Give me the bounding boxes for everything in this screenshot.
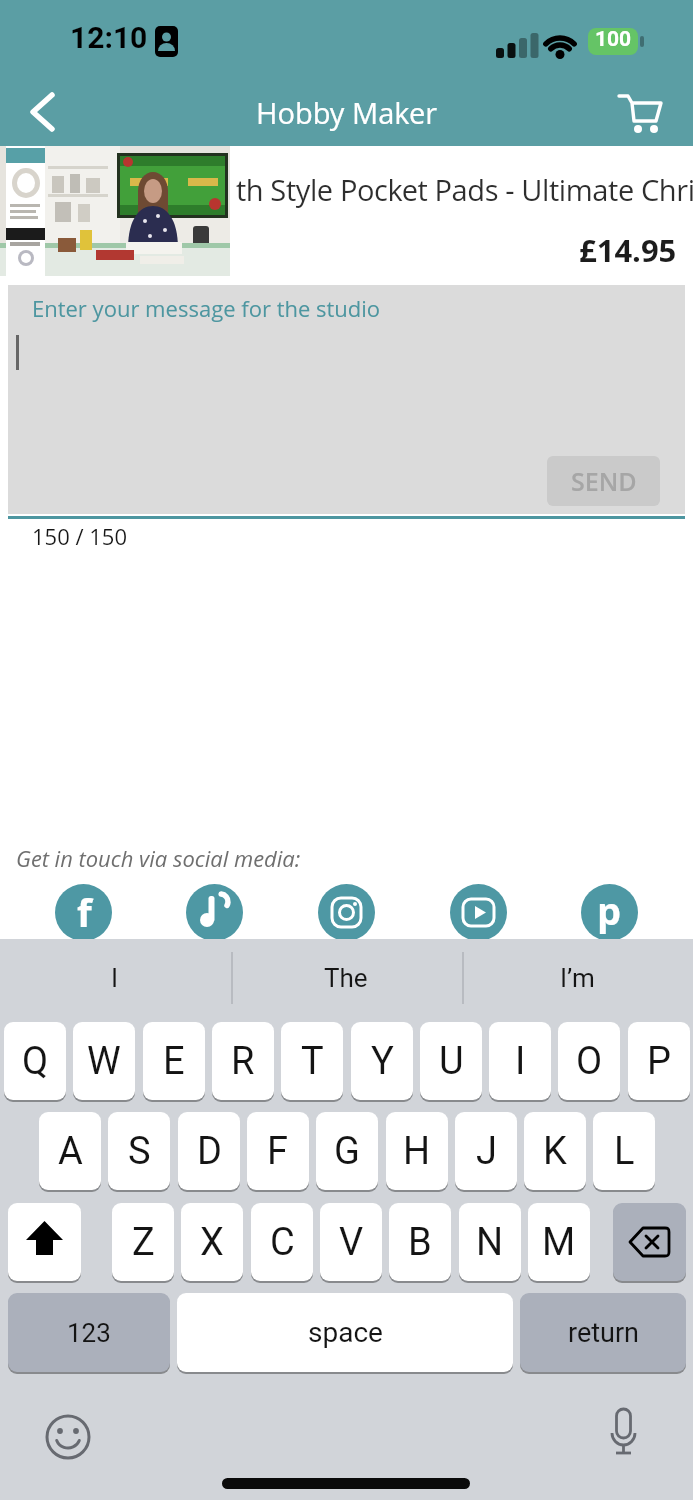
button[interactable]: 123: [8, 1293, 170, 1372]
button[interactable]: T: [281, 1022, 343, 1100]
staticText: F: [267, 1129, 289, 1174]
button[interactable]: I: [5, 950, 225, 1006]
staticText: K: [543, 1129, 567, 1174]
button[interactable]: [0, 146, 230, 276]
button[interactable]: [38, 1407, 98, 1467]
button[interactable]: X: [181, 1203, 243, 1281]
staticText: E: [163, 1039, 185, 1084]
button[interactable]: I’m: [467, 950, 687, 1006]
staticText: return: [568, 1317, 639, 1349]
button[interactable]: C: [251, 1203, 313, 1281]
button[interactable]: N: [459, 1203, 521, 1281]
staticText: 150 / 150: [32, 521, 127, 551]
button[interactable]: I: [489, 1022, 551, 1100]
staticText: D: [197, 1129, 222, 1174]
button[interactable]: [186, 884, 243, 941]
button[interactable]: Enter your message for the studio: [8, 285, 685, 514]
staticText: H: [403, 1129, 431, 1174]
button[interactable]: E: [143, 1022, 205, 1100]
staticText: A: [58, 1129, 83, 1174]
staticText: 12:10: [70, 20, 148, 55]
staticText: space: [308, 1316, 383, 1349]
staticText: Y: [371, 1039, 394, 1084]
button[interactable]: D: [178, 1112, 240, 1190]
staticText: I’m: [560, 963, 595, 993]
button[interactable]: [16, 86, 68, 138]
button[interactable]: space: [177, 1293, 513, 1372]
button[interactable]: U: [420, 1022, 482, 1100]
staticText: B: [408, 1220, 432, 1265]
button[interactable]: f: [55, 884, 112, 941]
staticText: X: [200, 1220, 224, 1265]
button[interactable]: [613, 1203, 686, 1281]
staticText: O: [576, 1039, 603, 1084]
button[interactable]: Y: [351, 1022, 413, 1100]
staticText: T: [301, 1039, 324, 1084]
button[interactable]: B: [389, 1203, 451, 1281]
staticText: Z: [132, 1220, 155, 1265]
staticText: C: [270, 1220, 295, 1265]
staticText: N: [476, 1220, 504, 1265]
staticText: £14.95: [579, 229, 677, 271]
staticText: 123: [67, 1318, 111, 1348]
button[interactable]: Q: [4, 1022, 66, 1100]
button[interactable]: R: [212, 1022, 274, 1100]
staticText: I: [111, 963, 119, 993]
button[interactable]: [450, 884, 507, 941]
staticText: I: [515, 1039, 526, 1084]
button[interactable]: V: [320, 1203, 382, 1281]
button[interactable]: [318, 884, 375, 941]
staticText: R: [231, 1039, 255, 1084]
button[interactable]: L: [593, 1112, 655, 1190]
staticText: SEND: [571, 464, 637, 498]
staticText: L: [614, 1129, 635, 1174]
staticText: M: [542, 1220, 576, 1265]
staticText: Q: [22, 1039, 49, 1084]
button[interactable]: [8, 1203, 81, 1281]
staticText: Enter your message for the studio: [32, 293, 381, 323]
staticText: p: [597, 884, 622, 936]
staticText: th Style Pocket Pads - Ultimate Chri: [236, 170, 693, 209]
button[interactable]: p: [581, 884, 638, 941]
button[interactable]: J: [455, 1112, 517, 1190]
staticText: The: [324, 963, 368, 993]
button[interactable]: Z: [112, 1203, 174, 1281]
button[interactable]: SEND: [547, 456, 660, 506]
staticText: J: [476, 1129, 497, 1174]
button[interactable]: M: [528, 1203, 590, 1281]
staticText: W: [87, 1039, 121, 1084]
button[interactable]: [593, 1403, 653, 1463]
staticText: 100: [595, 27, 632, 52]
button[interactable]: [608, 86, 672, 150]
button[interactable]: H: [386, 1112, 448, 1190]
button[interactable]: P: [628, 1022, 690, 1100]
button[interactable]: W: [73, 1022, 135, 1100]
button[interactable]: A: [39, 1112, 101, 1190]
staticText: G: [334, 1129, 360, 1174]
button[interactable]: O: [558, 1022, 620, 1100]
button[interactable]: The: [236, 950, 456, 1006]
button[interactable]: K: [524, 1112, 586, 1190]
staticText: V: [339, 1220, 364, 1265]
staticText: Hobby Maker: [256, 93, 438, 132]
button[interactable]: return: [520, 1293, 686, 1372]
staticText: U: [439, 1039, 464, 1084]
button[interactable]: S: [108, 1112, 170, 1190]
staticText: f: [77, 886, 92, 938]
staticText: Get in touch via social media:: [16, 843, 301, 873]
staticText: P: [647, 1039, 671, 1084]
button[interactable]: F: [247, 1112, 309, 1190]
button[interactable]: G: [316, 1112, 378, 1190]
staticText: S: [128, 1129, 151, 1174]
